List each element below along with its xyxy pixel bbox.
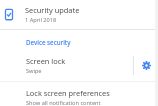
staticText: Swipe: [26, 67, 42, 75]
staticText: Security update: [25, 5, 80, 15]
staticText: 1 April 2018: [25, 16, 57, 24]
button[interactable]: Screen lock settings: [134, 54, 158, 77]
staticText: Show all notification content: [26, 99, 101, 106]
button[interactable]: Security update: [0, 0, 158, 29]
button[interactable]: Lock screen preferences: [0, 88, 158, 106]
button[interactable]: Screen lock: [0, 54, 133, 77]
staticText: Screen lock: [26, 56, 66, 66]
staticText: Device security: [26, 38, 71, 46]
staticText: Lock screen preferences: [26, 88, 110, 98]
